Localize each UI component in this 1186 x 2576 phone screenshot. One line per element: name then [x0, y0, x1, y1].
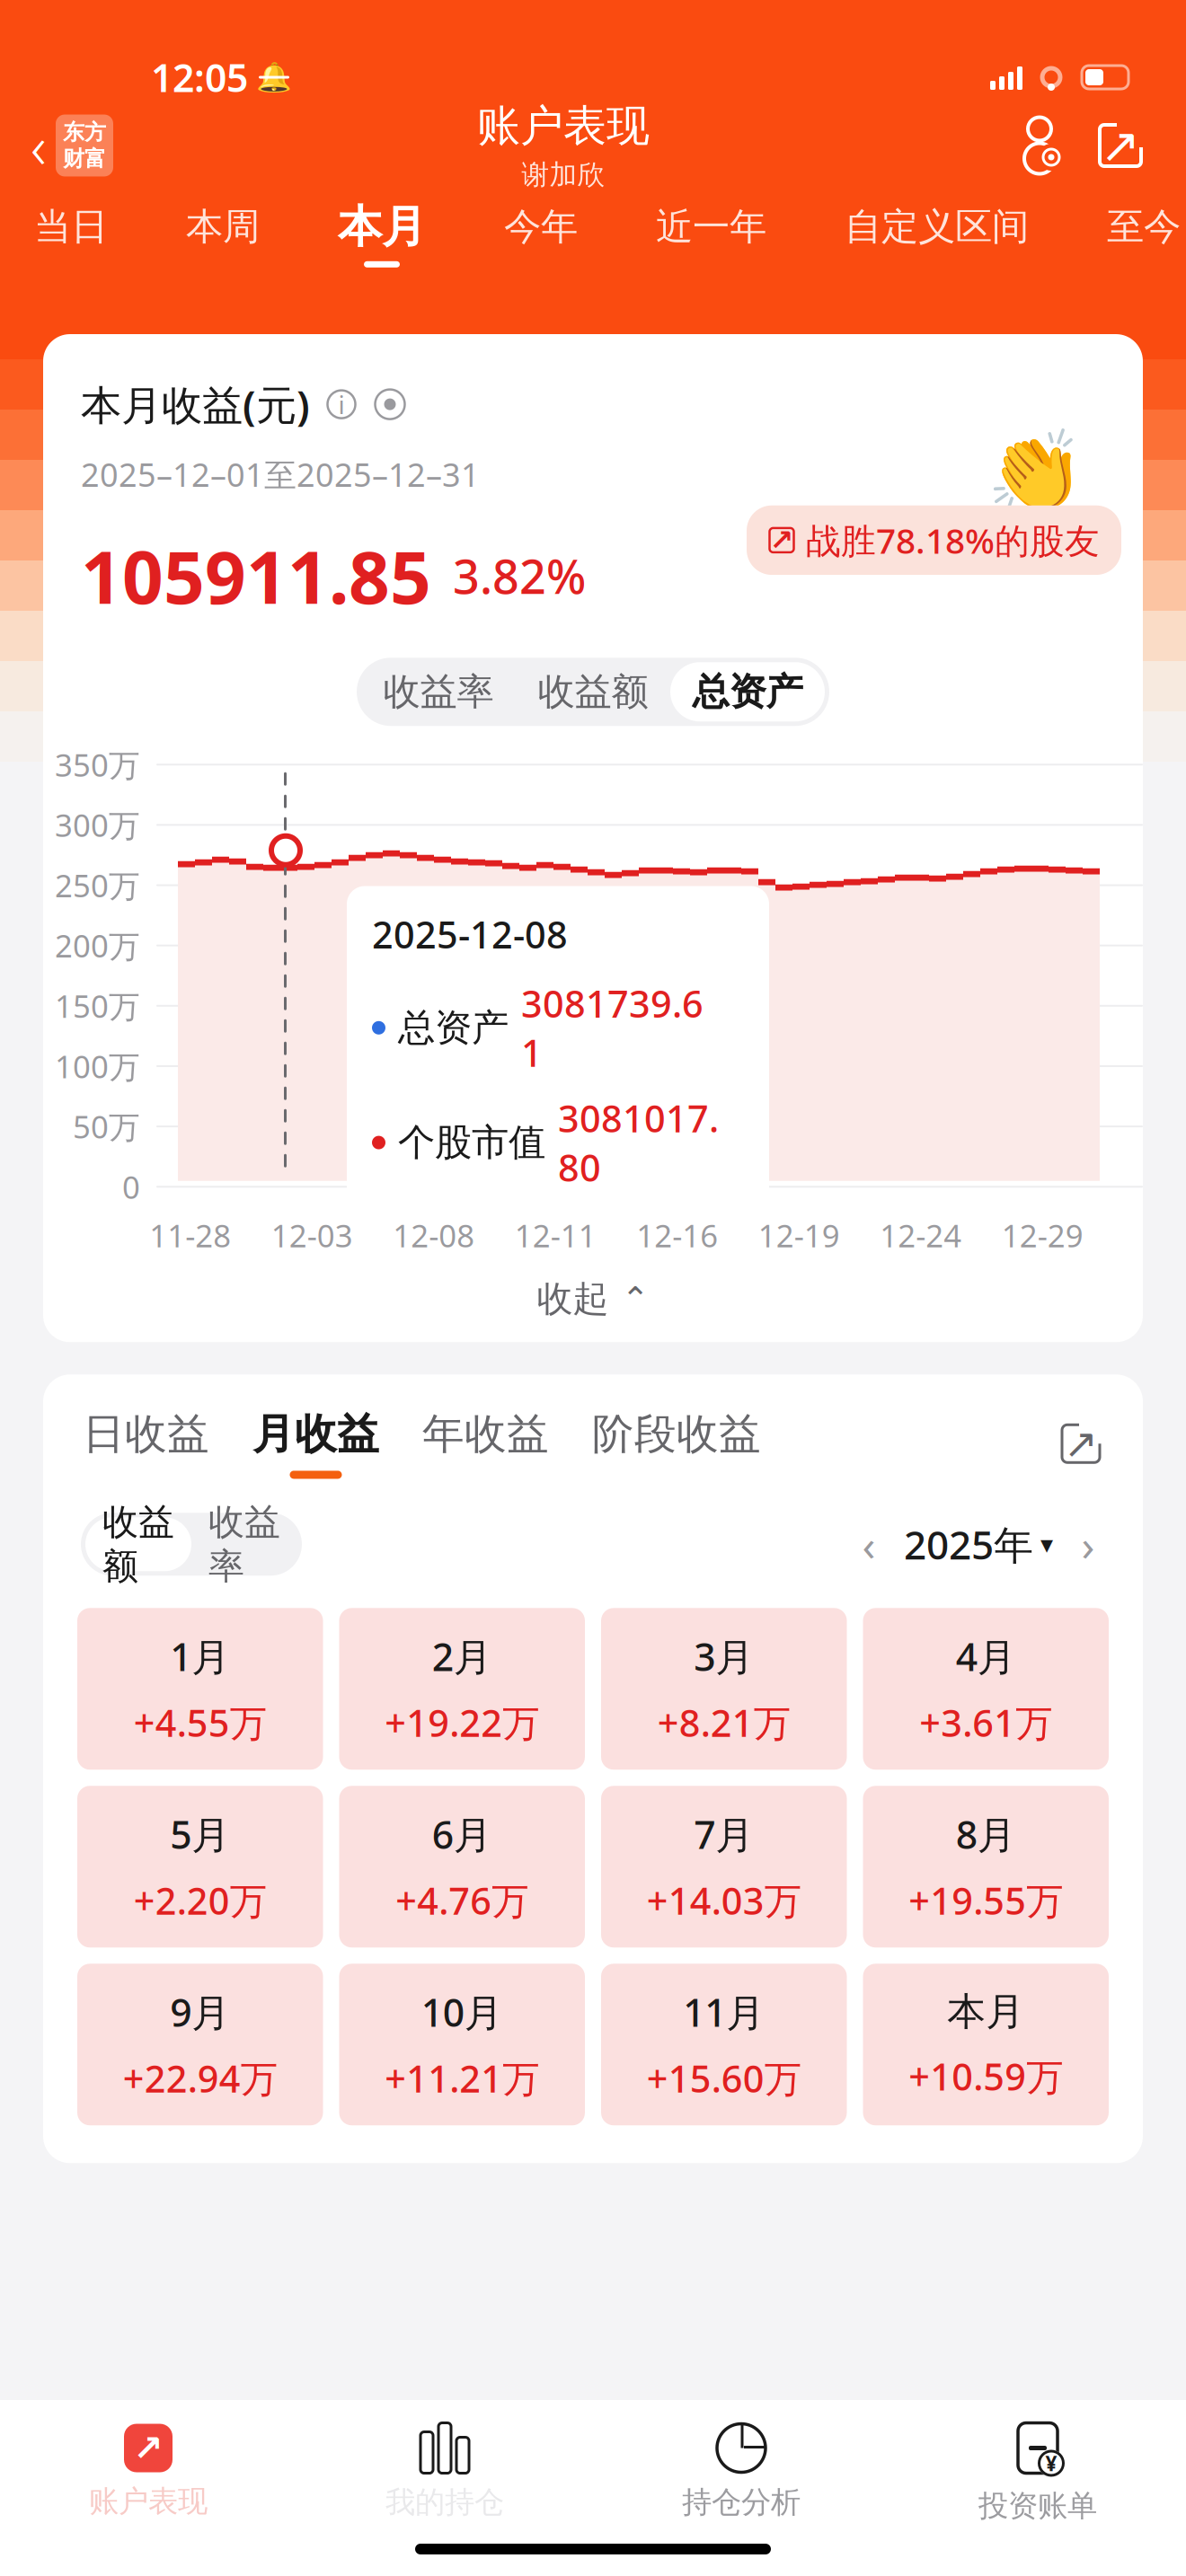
staticText: 持仓分析	[682, 2484, 801, 2521]
button[interactable]: 4月	[863, 1608, 1109, 1770]
staticText: 当日	[34, 204, 108, 250]
button[interactable]: 收益额	[85, 1517, 191, 1571]
button[interactable]: 今年	[504, 194, 578, 273]
button[interactable]: 6月	[339, 1786, 585, 1948]
button[interactable]: 访客模式	[1013, 119, 1066, 172]
staticText: 12-11	[515, 1215, 596, 1256]
button[interactable]: 10月	[339, 1964, 585, 2125]
staticText: +2.20万	[134, 1876, 267, 1925]
button[interactable]: ↗	[0, 2414, 296, 2529]
staticText: 4月	[956, 1631, 1016, 1682]
button[interactable]: 日收益	[83, 1407, 209, 1480]
staticText: 阶段收益	[592, 1408, 761, 1460]
staticText: 2025年	[904, 1518, 1033, 1570]
button[interactable]: 近一年	[656, 194, 766, 273]
button[interactable]: 本周	[186, 194, 260, 273]
staticText: 东方	[63, 119, 106, 146]
staticText: 12-03	[271, 1215, 353, 1256]
staticText: +15.60万	[647, 2053, 801, 2103]
button[interactable]: 收益率	[361, 662, 516, 721]
staticText: +22.94万	[123, 2053, 277, 2103]
button[interactable]: 收益额	[516, 662, 670, 721]
staticText: 7月	[694, 1808, 754, 1859]
staticText: 自定义区间	[845, 204, 1029, 250]
staticText: 至今	[1107, 204, 1181, 250]
staticText: 年收益	[422, 1408, 549, 1460]
staticText: 总资产	[692, 669, 803, 715]
staticText: 50万	[73, 1106, 140, 1147]
staticText: 12-08	[393, 1215, 475, 1256]
staticText: 2025–12–01至2025–12–31	[81, 453, 480, 496]
button[interactable]: 隐藏金额	[373, 387, 407, 421]
button[interactable]: 当日	[34, 194, 108, 273]
staticText: 账户表现	[477, 99, 650, 152]
button[interactable]: 2月	[339, 1608, 585, 1770]
button[interactable]: 本月	[338, 194, 426, 273]
staticText: 0	[122, 1166, 140, 1207]
button[interactable]: 9月	[77, 1964, 323, 2125]
button[interactable]: 7月	[601, 1786, 847, 1948]
button[interactable]: 5月	[77, 1786, 323, 1948]
staticText: +8.21万	[658, 1698, 790, 1747]
staticText: 100万	[55, 1045, 140, 1087]
staticText: 200万	[55, 925, 140, 966]
button[interactable]: 收益说明	[324, 387, 358, 421]
button[interactable]: ¥	[889, 2414, 1186, 2529]
staticText: 收益率	[208, 1500, 280, 1588]
button[interactable]: 2025年	[904, 1523, 1053, 1566]
staticText: ¥	[1045, 2450, 1057, 2477]
staticText: ‹	[862, 1516, 876, 1573]
button[interactable]: 11月	[601, 1964, 847, 2125]
staticText: 🔔	[256, 61, 292, 94]
staticText: 3.82%	[453, 545, 586, 607]
button[interactable]: 总资产	[670, 662, 825, 721]
staticText: +4.55万	[134, 1698, 267, 1747]
staticText: 11月	[683, 1986, 765, 2037]
button[interactable]: 分享收益	[1055, 1418, 1107, 1470]
button[interactable]: 分享	[1094, 119, 1146, 172]
staticText: 财富	[63, 146, 106, 172]
staticText: ↗	[1064, 1421, 1098, 1467]
button[interactable]: 1月	[77, 1608, 323, 1770]
button[interactable]: 上一年	[852, 1523, 886, 1566]
staticText: 12-16	[636, 1215, 718, 1256]
button[interactable]: 3月	[601, 1608, 847, 1770]
button[interactable]: 至今	[1107, 194, 1181, 273]
staticText: 12-19	[758, 1215, 840, 1256]
button[interactable]: 下一年	[1071, 1523, 1105, 1566]
staticText: +19.22万	[385, 1698, 539, 1747]
staticText: 11-28	[149, 1215, 231, 1256]
staticText: 账户表现	[89, 2483, 208, 2520]
staticText: +3.61万	[919, 1698, 1052, 1747]
button[interactable]: 收起	[43, 1256, 1143, 1342]
button[interactable]: 持仓分析	[593, 2414, 889, 2529]
button[interactable]: 年收益	[422, 1407, 549, 1480]
staticText: +14.03万	[647, 1876, 801, 1925]
staticText: 本月收益(元)	[81, 377, 310, 431]
button[interactable]: 本月	[863, 1964, 1109, 2125]
staticText: 12-24	[880, 1215, 962, 1256]
staticText: 1月	[170, 1631, 230, 1682]
staticText: 12-29	[1002, 1215, 1083, 1256]
button[interactable]: ↗	[747, 505, 1121, 575]
staticText: 150万	[55, 985, 140, 1026]
button[interactable]: 返回东方财富	[0, 104, 113, 187]
staticText: 战胜78.18%的股友	[806, 517, 1100, 563]
staticText: ‹	[31, 106, 47, 185]
staticText: 收益额	[538, 669, 648, 715]
staticText: 9月	[170, 1986, 230, 2037]
button[interactable]: 收益率	[191, 1517, 297, 1571]
staticText: 2025-12-08	[372, 909, 568, 959]
staticText: 收起	[537, 1277, 609, 1321]
staticText: 12:05	[151, 52, 248, 103]
button[interactable]: 阶段收益	[592, 1407, 761, 1480]
staticText: 日收益	[83, 1408, 209, 1460]
staticText: 收益额	[102, 1500, 174, 1588]
button[interactable]: 8月	[863, 1786, 1109, 1948]
button[interactable]: 自定义区间	[845, 194, 1029, 273]
staticText: 2月	[432, 1631, 492, 1682]
staticText: 本月	[338, 200, 426, 254]
staticText: +10.59万	[909, 2051, 1063, 2101]
button[interactable]: 我的持仓	[296, 2414, 593, 2529]
button[interactable]: 月收益	[252, 1407, 379, 1480]
